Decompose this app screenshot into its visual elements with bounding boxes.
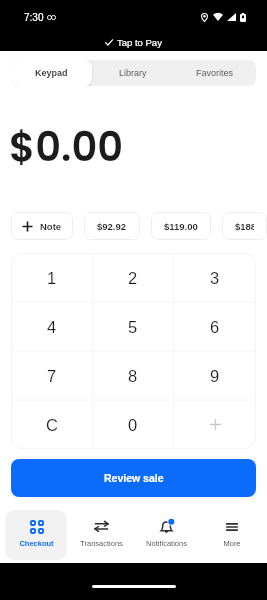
staticText: Review sale [104, 472, 164, 484]
staticText: Favorites [196, 68, 234, 78]
button[interactable]: 8 [92, 351, 174, 400]
other: Notifications [159, 519, 174, 534]
button[interactable]: Keypad [11, 60, 92, 86]
button[interactable]: 6 [174, 302, 256, 351]
button[interactable]: 3 [174, 253, 256, 302]
button[interactable]: 4 [11, 302, 92, 351]
staticText: 4 [47, 318, 57, 336]
button[interactable]: $188.00 [235, 212, 254, 240]
staticText: More [223, 539, 241, 547]
staticText: 8 [128, 367, 138, 385]
button[interactable]: Transactions [71, 510, 132, 560]
button[interactable]: 1 [11, 253, 92, 302]
staticText: 1 [47, 269, 57, 287]
staticText: $0.00 [9, 119, 124, 175]
button[interactable]: Library [92, 60, 174, 86]
button[interactable]: 9 [174, 351, 256, 400]
staticText: Transactions [80, 539, 123, 547]
button[interactable]: Favorites [174, 60, 256, 86]
button[interactable]: Note [22, 212, 62, 240]
staticText: 9 [210, 367, 220, 385]
staticText: 0 [128, 416, 138, 434]
staticText: $92.92 [97, 221, 127, 232]
button[interactable]: 5 [92, 302, 174, 351]
button[interactable]: $92.92 [97, 212, 127, 240]
staticText: $119.00 [164, 221, 198, 232]
other: Checkout [30, 520, 44, 534]
staticText: 2 [128, 269, 138, 287]
staticText: 6 [210, 318, 220, 336]
other: More [225, 520, 239, 534]
staticText: Keypad [35, 68, 68, 78]
staticText: Checkout [19, 539, 54, 547]
staticText: Tap to Pay [117, 37, 162, 48]
staticText: 7 [47, 367, 57, 385]
staticText: 7:30 [24, 12, 44, 23]
staticText: Note [40, 221, 62, 232]
staticText: Notifications [146, 539, 187, 547]
staticText: $188.00 [235, 221, 254, 232]
staticText: Library [119, 68, 147, 78]
button[interactable]: Checkout [5, 510, 67, 560]
button[interactable] [174, 400, 256, 449]
staticText: C [46, 416, 58, 434]
button[interactable]: $119.00 [164, 212, 198, 240]
other: Transactions [94, 519, 109, 534]
button[interactable]: Notifications [136, 510, 197, 560]
button[interactable]: C [11, 400, 92, 449]
button[interactable]: 2 [92, 253, 174, 302]
button[interactable]: 0 [92, 400, 174, 449]
staticText: 3 [210, 269, 220, 287]
staticText: 5 [128, 318, 138, 336]
button[interactable]: 7 [11, 351, 92, 400]
button[interactable]: More [201, 510, 262, 560]
button[interactable]: Review sale [11, 459, 256, 497]
